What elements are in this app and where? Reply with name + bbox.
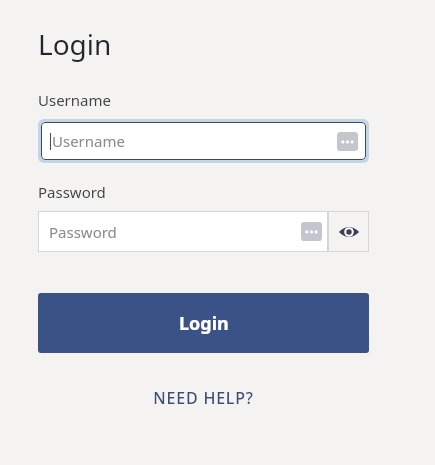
button[interactable]: Show password xyxy=(328,211,369,252)
staticText: Login xyxy=(179,311,229,336)
button[interactable]: NEED HELP? xyxy=(147,383,260,413)
staticText: Login xyxy=(38,25,112,63)
staticText: Password xyxy=(49,222,117,242)
button[interactable]: Login xyxy=(38,293,369,353)
button[interactable]: Password xyxy=(38,211,328,252)
staticText: Username xyxy=(38,90,111,110)
button[interactable]: Username xyxy=(41,122,366,160)
staticText: Password xyxy=(38,182,106,202)
staticText: NEED HELP? xyxy=(153,387,254,409)
staticText: Username xyxy=(52,131,125,151)
